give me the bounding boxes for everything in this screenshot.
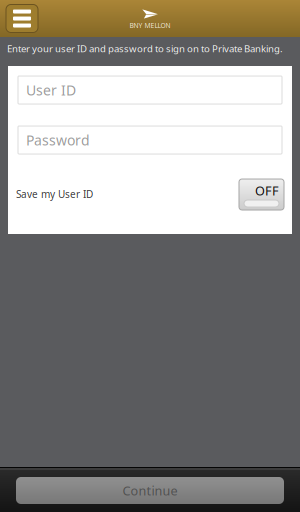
staticText: User ID	[26, 80, 76, 100]
staticText: Save my User ID	[16, 187, 93, 201]
staticText: BNY MELLON	[129, 21, 170, 30]
staticText: Continue	[122, 482, 177, 499]
staticText: Password	[26, 130, 90, 150]
button[interactable]: Continue	[0, 470, 300, 512]
button[interactable]: Menu	[6, 4, 38, 32]
staticText: Enter your user ID and password to sign …	[7, 42, 283, 55]
button[interactable]: Save my User ID, off	[239, 179, 284, 210]
staticText: OFF	[255, 182, 279, 199]
